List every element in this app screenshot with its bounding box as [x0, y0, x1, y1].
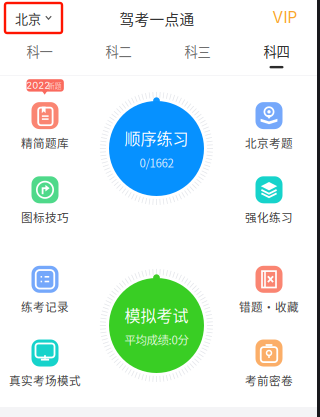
staticText: 精简题库 — [21, 134, 69, 151]
staticText: 真实考场模式 — [9, 372, 81, 389]
button[interactable]: VIP 会员 — [267, 6, 303, 28]
staticText: 图标技巧 — [21, 209, 69, 225]
button[interactable]: 科二 — [79, 37, 158, 73]
button[interactable]: 模拟考试 — [98, 267, 214, 383]
button[interactable]: 考前密卷 — [224, 339, 314, 391]
staticText: 考前密卷 — [245, 372, 293, 389]
button[interactable]: 科三 — [158, 37, 237, 73]
button[interactable]: 错题·收藏 — [224, 266, 314, 318]
staticText: VIP — [272, 8, 297, 27]
staticText: 科一 — [26, 42, 52, 61]
button[interactable]: 练考记录 — [0, 266, 90, 318]
button[interactable]: 精简题库 — [0, 102, 90, 154]
button[interactable]: 强化练习 — [224, 176, 314, 228]
staticText: 科二 — [105, 42, 131, 61]
staticText: 0/1662 — [139, 154, 173, 171]
button[interactable]: 科一 — [0, 37, 79, 73]
staticText: 错题·收藏 — [239, 298, 299, 315]
button[interactable]: 顺序练习 — [98, 90, 214, 206]
staticText: 强化练习 — [245, 209, 293, 225]
button[interactable]: 科四 — [237, 37, 316, 73]
staticText: 北京 — [15, 8, 41, 27]
staticText: 顺序练习 — [124, 126, 188, 149]
button[interactable]: 图标技巧 — [0, 176, 90, 228]
button[interactable]: 真实考场模式 — [0, 339, 90, 391]
staticText: 新题 — [48, 81, 62, 91]
staticText: 模拟考试 — [124, 303, 188, 326]
staticText: 2022 — [26, 79, 50, 91]
staticText: 科三 — [184, 42, 210, 61]
button[interactable]: 选择城市 北京 — [5, 3, 62, 33]
staticText: 科四 — [263, 42, 289, 61]
staticText: 驾考一点通 — [119, 8, 194, 29]
button[interactable]: 北京考题 — [224, 102, 314, 154]
staticText: 北京考题 — [245, 134, 293, 151]
staticText: 练考记录 — [21, 298, 69, 315]
staticText: 平均成绩:0分 — [124, 331, 188, 348]
